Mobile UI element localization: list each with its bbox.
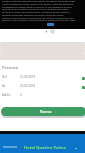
staticText: consulta la nostra informativa estesa. C… (2, 11, 70, 14)
staticText: website. If you continue to use this sit… (2, 19, 76, 22)
staticText: la navigazione e offrirti servizi in lin… (2, 6, 72, 9)
button[interactable]: Calendario (82, 77, 85, 80)
button[interactable]: Adulti: (0, 92, 85, 101)
staticText: I cookie ci aiutano a fornire i nostri s… (2, 0, 76, 3)
button[interactable]: Facebook (44, 29, 49, 34)
staticText: Prenota (2, 64, 18, 70)
staticText: il nostro utilizzo dei cookie. Questo si… (2, 3, 74, 6)
staticText: saperne di piu' o negare il consenso a t… (2, 8, 69, 11)
staticText: Adulti: (2, 93, 11, 97)
staticText: 2 (20, 93, 22, 97)
staticText: Dal: (2, 75, 8, 79)
button[interactable]: Dal: (0, 74, 85, 83)
staticText: We use cookies to ensure that we give yo… (2, 17, 74, 20)
button[interactable]: Ricerca (1, 107, 85, 116)
staticText: Ricerca (40, 109, 52, 114)
button[interactable]: Hotel Quattro Palme (24, 145, 67, 151)
staticText: cliccando qualunque elemento acconsenti … (2, 14, 64, 17)
staticText: Al: (2, 84, 6, 88)
staticText: 21-06-2018 (20, 75, 36, 79)
staticText: 22-06-2018 (20, 84, 36, 88)
button[interactable]: Accetto i cookie (47, 23, 54, 26)
button[interactable]: Condividi (50, 29, 55, 34)
button[interactable]: Calendario (82, 86, 85, 89)
button[interactable]: Al: (0, 83, 85, 92)
